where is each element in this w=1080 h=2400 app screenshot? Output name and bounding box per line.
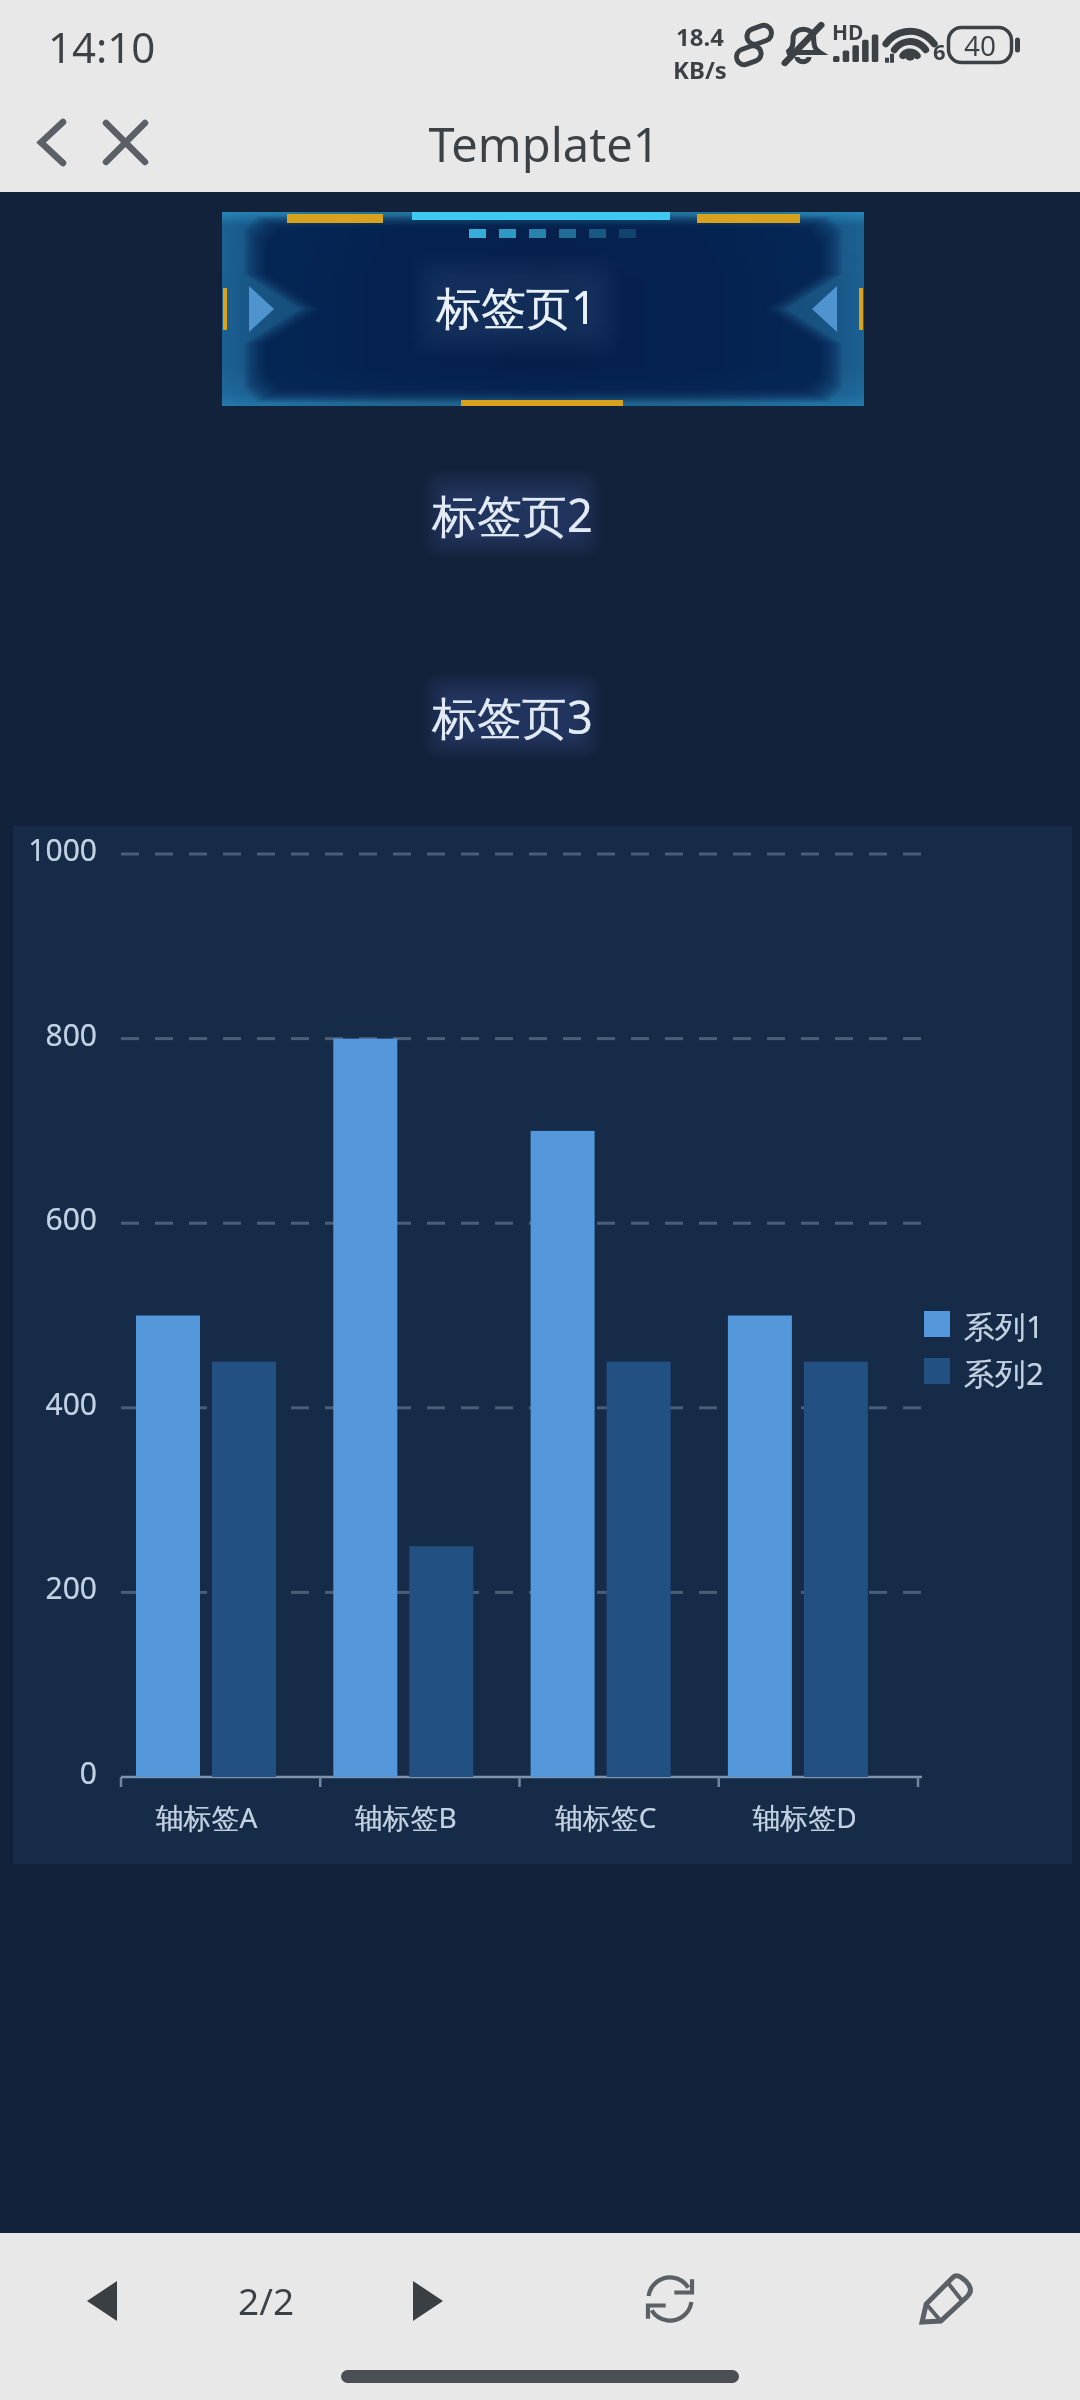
staticText: 系列1 [964,1305,1044,1343]
button[interactable]: Previous [62,2261,142,2341]
staticText: 轴标签A [107,1798,306,1836]
staticText: 40 [964,26,997,64]
button[interactable]: 标签页2 [394,449,630,579]
button[interactable]: Back [20,110,84,174]
staticText: 400 [13,1383,97,1424]
staticText: 系列2 [964,1352,1044,1390]
button[interactable]: Close [93,110,157,174]
staticText: 0 [13,1752,97,1793]
button[interactable]: 系列1 [924,1305,1044,1343]
staticText: 2/2 [238,2275,295,2325]
staticText: 标签页1 [436,276,597,337]
staticText: 18.4 [676,20,724,53]
staticText: Template1 [4,112,1080,176]
button[interactable]: Next [388,2261,468,2341]
button[interactable]: Refresh [630,2259,710,2339]
button[interactable]: 系列2 [924,1352,1044,1390]
button[interactable]: 标签页1 [222,212,864,406]
staticText: 标签页3 [432,686,593,747]
staticText: KB/s [673,53,727,86]
staticText: 200 [13,1567,97,1608]
staticText: HD [832,18,864,47]
button[interactable]: Edit [906,2259,986,2339]
staticText: 14:10 [48,18,156,75]
staticText: 6 [933,36,946,66]
staticText: 600 [13,1198,97,1239]
staticText: 轴标签C [506,1798,705,1836]
staticText: 1000 [13,829,97,870]
staticText: 标签页2 [432,484,593,545]
staticText: 轴标签B [306,1798,505,1836]
staticText: 800 [13,1014,97,1055]
button[interactable]: 标签页3 [394,651,630,781]
staticText: 轴标签D [705,1798,904,1836]
